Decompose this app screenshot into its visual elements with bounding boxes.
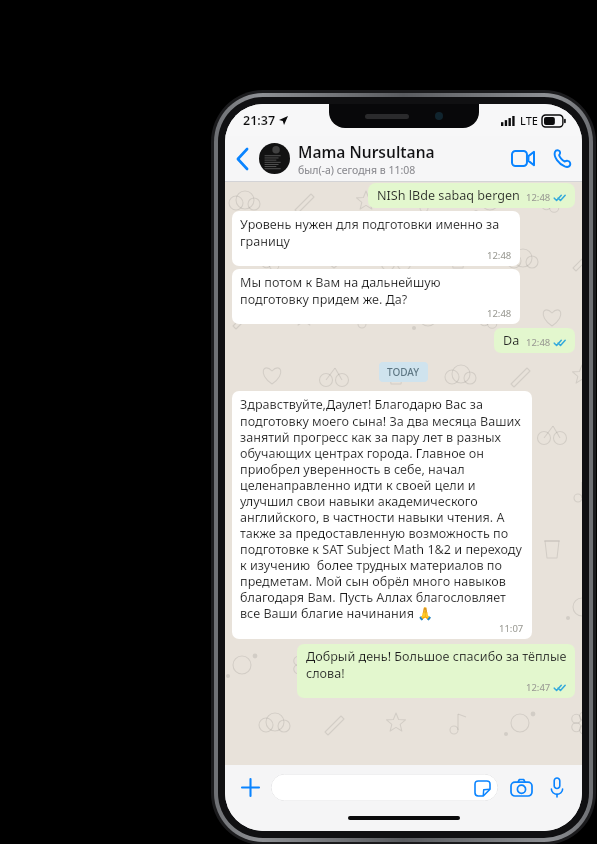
button[interactable]: Stickers <box>473 779 491 797</box>
staticText: 12:48 <box>487 249 512 262</box>
button[interactable]: Добрый день! Большое спасибо за тёплые с… <box>297 644 575 698</box>
staticText: 12:48 <box>526 336 551 349</box>
staticText: 12:47 <box>526 681 551 694</box>
staticText: 12:48 <box>526 191 551 204</box>
staticText: LTE <box>520 113 538 128</box>
staticText: NISh lBde sabaq bergen <box>377 187 520 204</box>
staticText: Da <box>503 332 520 349</box>
staticText: Здравствуйте,Даулет! Благодарю Вас за по… <box>240 396 524 622</box>
button[interactable]: Mama Nursultana <box>298 141 504 177</box>
staticText: TODAY <box>387 365 420 379</box>
button[interactable]: Contact photo <box>259 143 290 174</box>
staticText: 12:48 <box>487 307 512 320</box>
staticText: Добрый день! Большое спасибо за тёплые с… <box>306 648 567 681</box>
button[interactable]: Здравствуйте,Даулет! Благодарю Вас за по… <box>232 391 532 639</box>
button[interactable]: Back <box>225 136 259 181</box>
staticText: Уровень нужен для подготовки именно за г… <box>240 216 512 249</box>
button[interactable]: Voice message <box>542 772 572 802</box>
button[interactable]: Attach <box>235 772 265 802</box>
staticText: Mama Nursultana <box>298 141 435 162</box>
staticText: Мы потом к Вам на дальнейшую подготовку … <box>240 274 512 307</box>
staticText: 21:37 <box>243 112 276 129</box>
button[interactable]: Уровень нужен для подготовки именно за г… <box>232 211 520 266</box>
button[interactable]: NISh lBde sabaq bergen <box>368 183 575 208</box>
staticText: был(-а) сегодня в 11:08 <box>298 163 416 177</box>
button[interactable]: Мы потом к Вам на дальнейшую подготовку … <box>232 269 520 324</box>
button[interactable]: Voice call <box>542 136 582 181</box>
button[interactable]: Video call <box>504 136 542 181</box>
button[interactable]: Da <box>494 328 575 353</box>
button[interactable]: Stickers <box>271 774 498 801</box>
button[interactable]: Camera <box>506 772 536 802</box>
staticText: 11:07 <box>499 622 524 635</box>
